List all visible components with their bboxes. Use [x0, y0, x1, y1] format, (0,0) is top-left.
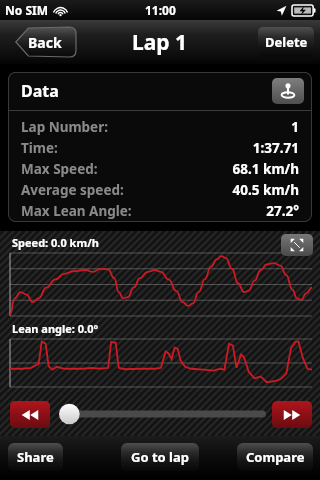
- button[interactable]: Gear shifter: [272, 78, 304, 104]
- staticText: Back: [28, 33, 62, 52]
- staticText: 68.1 km/h: [232, 160, 299, 178]
- staticText: Compare: [246, 448, 305, 466]
- button[interactable]: [58, 403, 268, 425]
- staticText: Average speed:: [21, 181, 124, 199]
- button[interactable]: Rewind: [10, 401, 50, 428]
- staticText: Delete: [265, 33, 308, 51]
- staticText: 1:37.71: [252, 139, 299, 157]
- staticText: Speed: 0.0 km/h: [12, 235, 99, 250]
- button[interactable]: Share: [8, 443, 63, 471]
- staticText: 11:00: [145, 2, 176, 18]
- staticText: No SIM: [5, 2, 48, 18]
- button[interactable]: Back: [6, 27, 76, 57]
- button[interactable]: Delete: [258, 27, 314, 57]
- staticText: 40.5 km/h: [232, 181, 299, 199]
- staticText: Go to lap: [131, 448, 189, 466]
- button[interactable]: Compare: [237, 443, 313, 471]
- staticText: Data: [21, 80, 59, 102]
- staticText: 27.2°: [266, 202, 299, 220]
- staticText: Max Speed:: [21, 160, 98, 178]
- staticText: Lap Number:: [21, 118, 109, 136]
- button[interactable]: Go to lap: [121, 443, 199, 471]
- button[interactable]: Expand graph: [281, 234, 313, 256]
- button[interactable]: Fast forward: [272, 401, 312, 428]
- staticText: Lap 1: [132, 28, 188, 57]
- staticText: Share: [17, 448, 54, 466]
- staticText: Lean angle: 0.0°: [12, 321, 99, 336]
- staticText: 1: [291, 118, 299, 136]
- staticText: Max Lean Angle:: [21, 202, 132, 220]
- staticText: Time:: [21, 139, 58, 157]
